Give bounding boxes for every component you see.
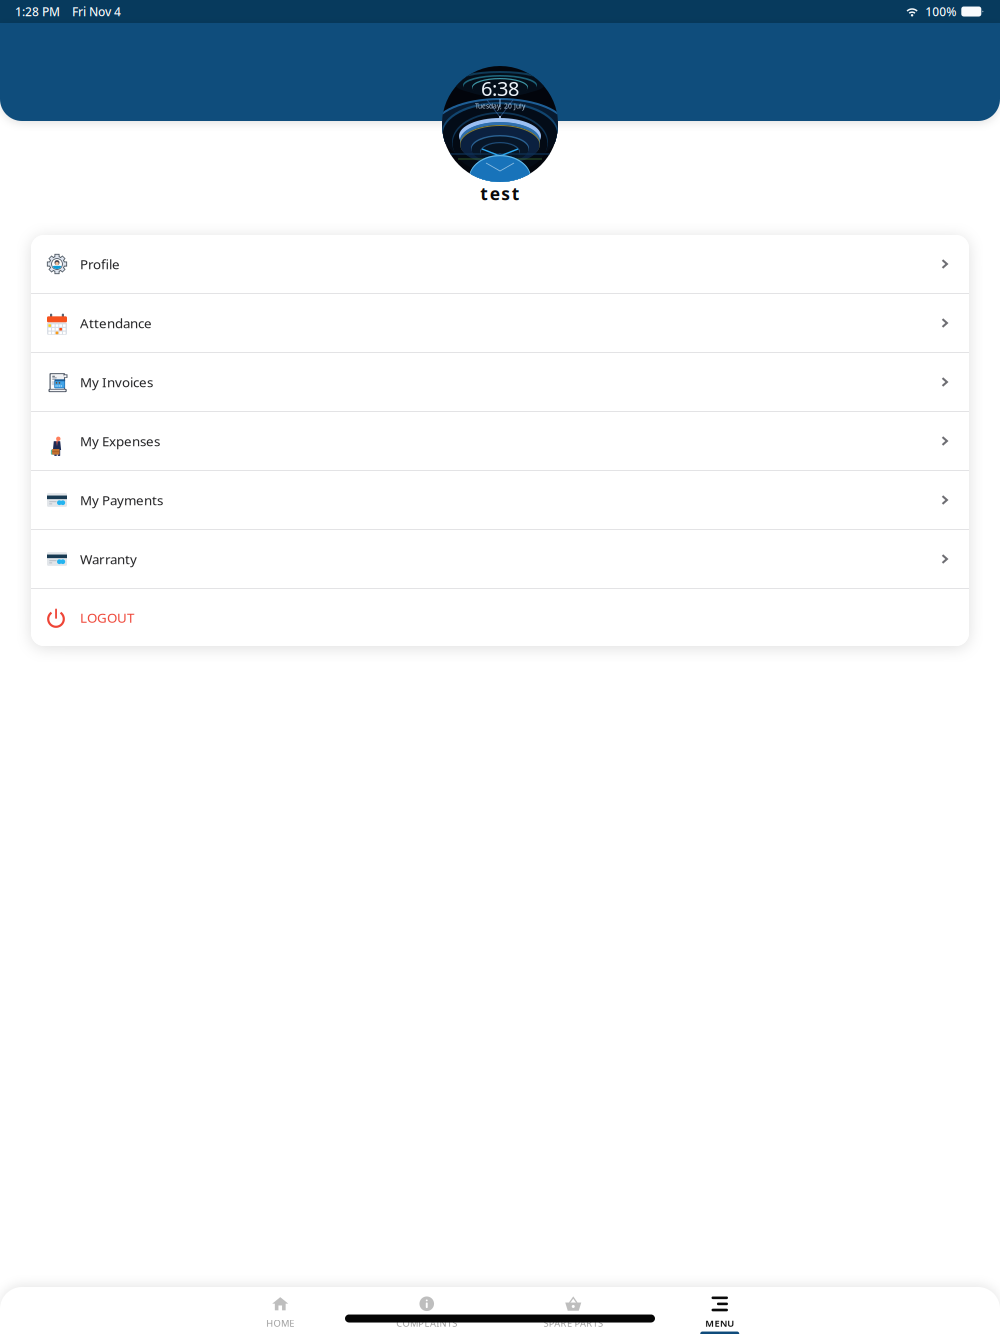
button[interactable]: LOGOUT [31,589,969,646]
staticText: Profile [80,255,120,273]
staticText: Attendance [80,314,152,332]
staticText: Warranty [80,550,137,568]
staticText: My Invoices [80,373,153,391]
button[interactable]: Profile [31,235,969,293]
staticText: LOGOUT [80,609,134,626]
button[interactable]: Attendance [31,294,969,352]
staticText: 100% [925,3,956,19]
button[interactable]: SPARE PARTS [500,1291,646,1334]
staticText: Fri Nov 4 [72,3,121,19]
staticText: My Payments [80,491,163,509]
button[interactable]: My Expenses [31,412,969,470]
staticText: 1:28 PM [15,3,60,19]
button[interactable]: My Payments [31,471,969,529]
staticText: MENU [705,1317,734,1329]
staticText: Tuesday, 20 July [475,102,525,110]
staticText: COMPLAINTS [396,1317,457,1329]
staticText: 6:38 [481,75,519,102]
staticText: SPARE PARTS [543,1317,603,1329]
button[interactable]: MENU [646,1291,793,1334]
button[interactable]: Warranty [31,530,969,588]
staticText: test [480,182,520,205]
button[interactable]: My Invoices [31,353,969,411]
button[interactable]: HOME [207,1291,353,1334]
button[interactable]: COMPLAINTS [353,1291,500,1334]
staticText: My Expenses [80,432,160,450]
staticText: HOME [266,1317,294,1329]
